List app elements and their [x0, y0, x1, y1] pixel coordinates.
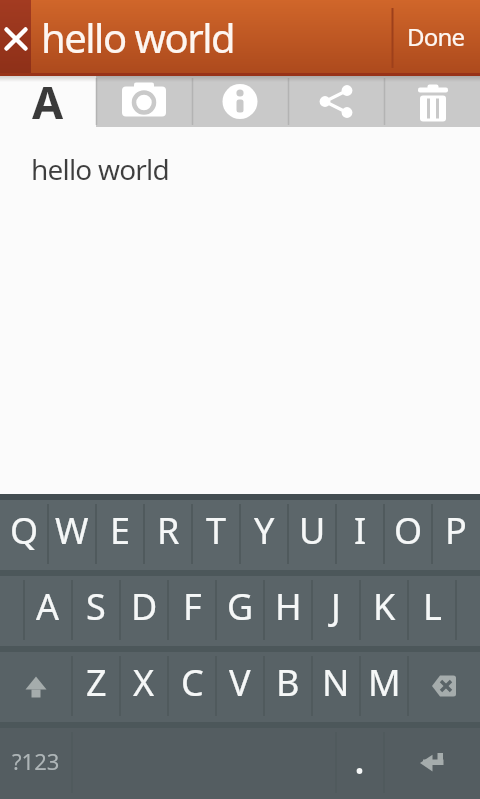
staticText: R [157, 506, 180, 555]
button[interactable]: R [144, 500, 192, 570]
button[interactable]: U [288, 500, 336, 570]
staticText: V [229, 658, 251, 707]
staticText: ?123 [12, 746, 60, 776]
button[interactable]: Z [72, 652, 120, 722]
staticText: A [32, 71, 64, 122]
staticText: hello world [41, 10, 392, 64]
button[interactable] [192, 76, 288, 127]
staticText: W [55, 506, 89, 555]
button[interactable]: I [336, 500, 384, 570]
button[interactable]: A [0, 76, 96, 127]
staticText: Y [254, 506, 275, 555]
staticText: S [86, 582, 106, 631]
staticText: P [445, 506, 467, 555]
staticText: B [276, 658, 300, 707]
staticText: U [299, 506, 326, 555]
button[interactable]: E [96, 500, 144, 570]
button[interactable]: X [120, 652, 168, 722]
staticText: D [131, 582, 158, 631]
button[interactable]: V [216, 652, 264, 722]
staticText: H [275, 582, 302, 631]
button[interactable]: Y [240, 500, 288, 570]
button[interactable]: J [312, 576, 360, 646]
button[interactable]: K [360, 576, 408, 646]
staticText: C [181, 658, 204, 707]
staticText: F [183, 582, 202, 631]
button[interactable]: A [24, 576, 72, 646]
staticText: L [423, 582, 442, 631]
staticText: J [331, 582, 341, 631]
staticText: A [36, 582, 60, 631]
button[interactable] [288, 76, 384, 127]
button[interactable]: L [408, 576, 456, 646]
staticText: K [373, 582, 396, 631]
button[interactable]: Q [0, 500, 48, 570]
button[interactable] [0, 652, 72, 722]
button[interactable]: H [264, 576, 312, 646]
button[interactable] [96, 76, 192, 127]
button[interactable]: P [432, 500, 480, 570]
staticText: T [206, 506, 227, 555]
button[interactable] [384, 728, 480, 799]
button[interactable]: N [312, 652, 360, 722]
button[interactable] [0, 0, 31, 73]
staticText: O [394, 506, 423, 555]
staticText: Done [407, 20, 465, 53]
button[interactable] [384, 76, 480, 127]
button[interactable]: M [360, 652, 408, 722]
staticText: N [322, 658, 350, 707]
button[interactable]: O [384, 500, 432, 570]
button[interactable]: Done [392, 0, 480, 73]
staticText: hello world [31, 150, 169, 188]
staticText: Q [10, 506, 39, 555]
staticText: G [227, 582, 254, 631]
button[interactable] [336, 728, 384, 799]
staticText: X [133, 658, 155, 707]
staticText: I [354, 506, 367, 555]
button[interactable]: S [72, 576, 120, 646]
button[interactable] [408, 652, 480, 722]
staticText: M [368, 658, 401, 707]
button[interactable]: F [168, 576, 216, 646]
staticText: Z [86, 658, 107, 707]
button[interactable]: C [168, 652, 216, 722]
button[interactable]: T [192, 500, 240, 570]
button[interactable]: W [48, 500, 96, 570]
button[interactable]: B [264, 652, 312, 722]
button[interactable]: D [120, 576, 168, 646]
staticText: E [110, 506, 131, 555]
button[interactable]: ?123 [0, 728, 72, 799]
button[interactable]: G [216, 576, 264, 646]
